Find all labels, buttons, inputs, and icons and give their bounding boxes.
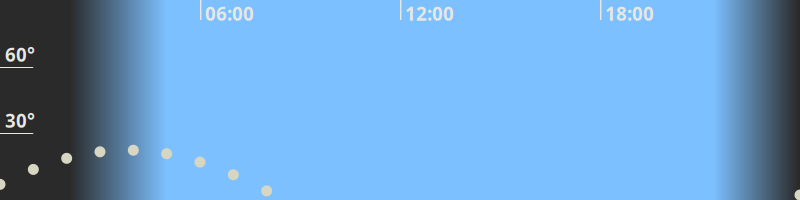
staticText: 30°	[5, 108, 35, 133]
staticText: 06:00	[205, 1, 254, 26]
staticText: 18:00	[605, 1, 654, 26]
button[interactable]: Sun altitude chart	[0, 0, 800, 200]
staticText: 60°	[5, 42, 35, 67]
staticText: 12:00	[405, 1, 454, 26]
